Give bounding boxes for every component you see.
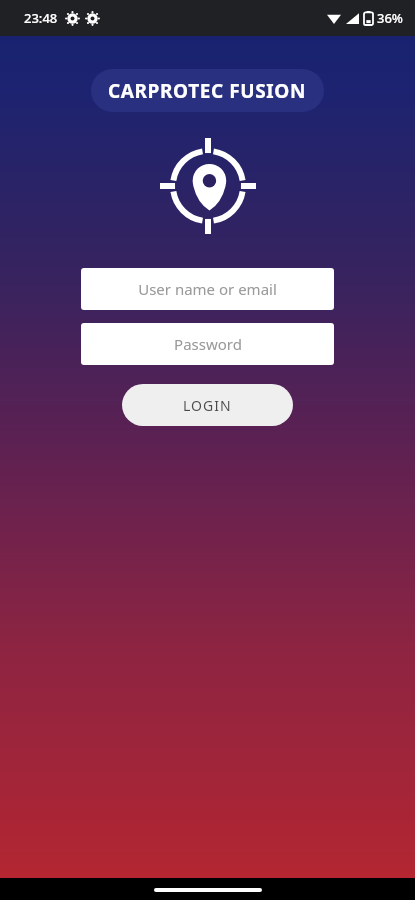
staticText: LOGIN bbox=[183, 396, 232, 415]
button[interactable]: LOGIN bbox=[122, 384, 293, 426]
staticText: Password bbox=[174, 334, 242, 354]
staticText: 36% bbox=[377, 9, 403, 27]
button[interactable]: CARPROTEC FUSION bbox=[91, 69, 324, 112]
staticText: User name or email bbox=[138, 279, 277, 299]
staticText: CARPROTEC FUSION bbox=[108, 78, 307, 104]
button[interactable]: User name or email bbox=[81, 268, 334, 310]
staticText: 23:48 bbox=[24, 9, 58, 27]
button[interactable]: Password bbox=[81, 323, 334, 365]
other: App logo bbox=[160, 138, 256, 234]
